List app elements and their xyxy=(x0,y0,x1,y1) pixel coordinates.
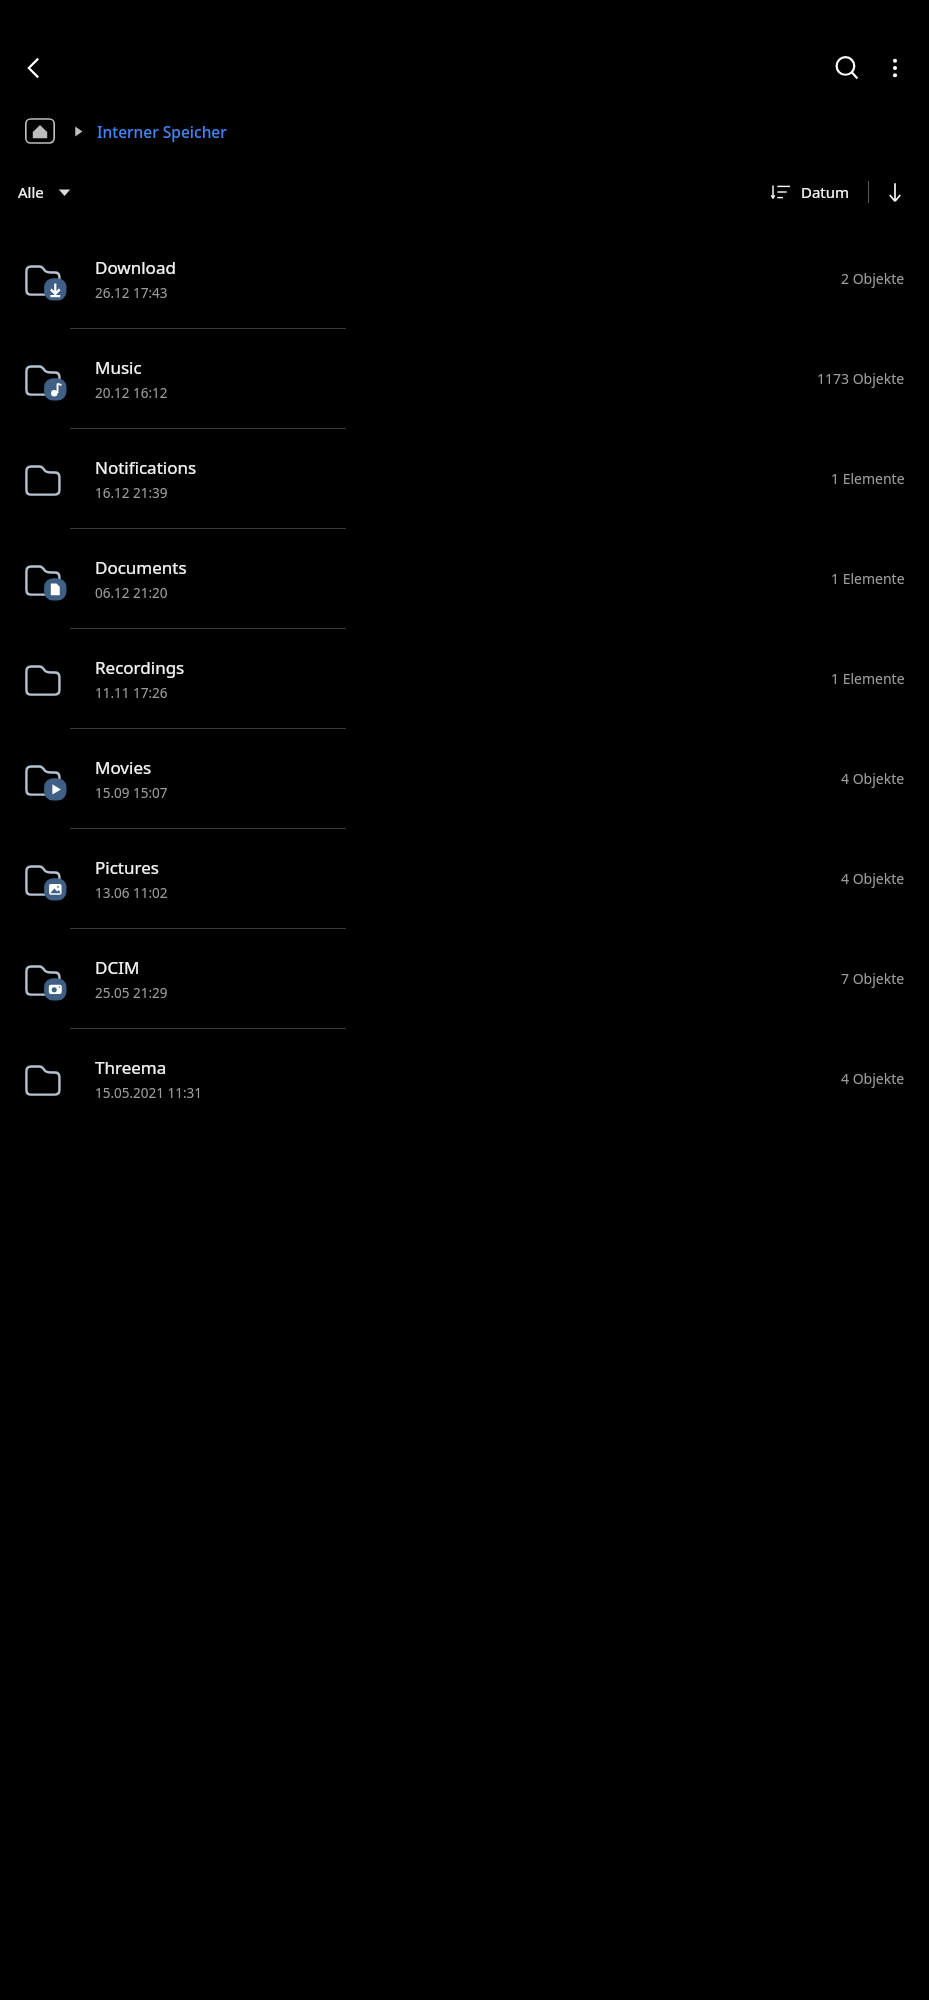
staticText: 15.05.2021 11:31 xyxy=(95,1084,203,1102)
button[interactable]: Music xyxy=(0,329,929,428)
staticText: Alle xyxy=(18,182,44,202)
button[interactable]: Recordings xyxy=(0,629,929,728)
button[interactable]: Search xyxy=(823,44,871,92)
staticText: 13.06 11:02 xyxy=(95,884,168,902)
staticText: 26.12 17:43 xyxy=(95,284,168,302)
button[interactable]: Interner Speicher xyxy=(97,121,227,142)
staticText: 06.12 21:20 xyxy=(95,584,168,602)
staticText: 20.12 16:12 xyxy=(95,384,168,402)
button[interactable]: Back xyxy=(10,44,58,92)
staticText: Music xyxy=(95,356,142,379)
staticText: 2 Objekte xyxy=(841,269,905,288)
staticText: 4 Objekte xyxy=(841,769,905,788)
button[interactable]: Documents xyxy=(0,529,929,628)
button[interactable]: Threema xyxy=(0,1029,929,1128)
button[interactable]: Sort direction xyxy=(875,172,915,212)
button[interactable]: Datum xyxy=(767,176,854,208)
staticText: Recordings xyxy=(95,656,185,679)
button[interactable]: DCIM xyxy=(0,929,929,1028)
staticText: 1 Elemente xyxy=(831,669,905,688)
staticText: Movies xyxy=(95,756,152,779)
staticText: 16.12 21:39 xyxy=(95,484,168,502)
staticText: 15.09 15:07 xyxy=(95,784,168,802)
staticText: 4 Objekte xyxy=(841,1069,905,1088)
staticText: 11.11 17:26 xyxy=(95,684,168,702)
staticText: 4 Objekte xyxy=(841,869,905,888)
button[interactable]: Notifications xyxy=(0,429,929,528)
staticText: 1 Elemente xyxy=(831,469,905,488)
staticText: DCIM xyxy=(95,956,140,979)
button[interactable]: Pictures xyxy=(0,829,929,928)
staticText: 7 Objekte xyxy=(841,969,905,988)
staticText: 1173 Objekte xyxy=(817,369,905,388)
staticText: Datum xyxy=(801,182,850,202)
staticText: Pictures xyxy=(95,856,159,879)
staticText: 1 Elemente xyxy=(831,569,905,588)
button[interactable]: Alle xyxy=(12,178,77,206)
button[interactable]: More options xyxy=(871,44,919,92)
button[interactable]: Download xyxy=(0,229,929,328)
staticText: 25.05 21:29 xyxy=(95,984,168,1002)
staticText: Documents xyxy=(95,556,187,579)
button[interactable]: Home xyxy=(22,113,58,149)
staticText: Download xyxy=(95,256,176,279)
staticText: Notifications xyxy=(95,456,197,479)
staticText: Threema xyxy=(95,1056,167,1079)
staticText: Interner Speicher xyxy=(97,121,227,142)
button[interactable]: Movies xyxy=(0,729,929,828)
